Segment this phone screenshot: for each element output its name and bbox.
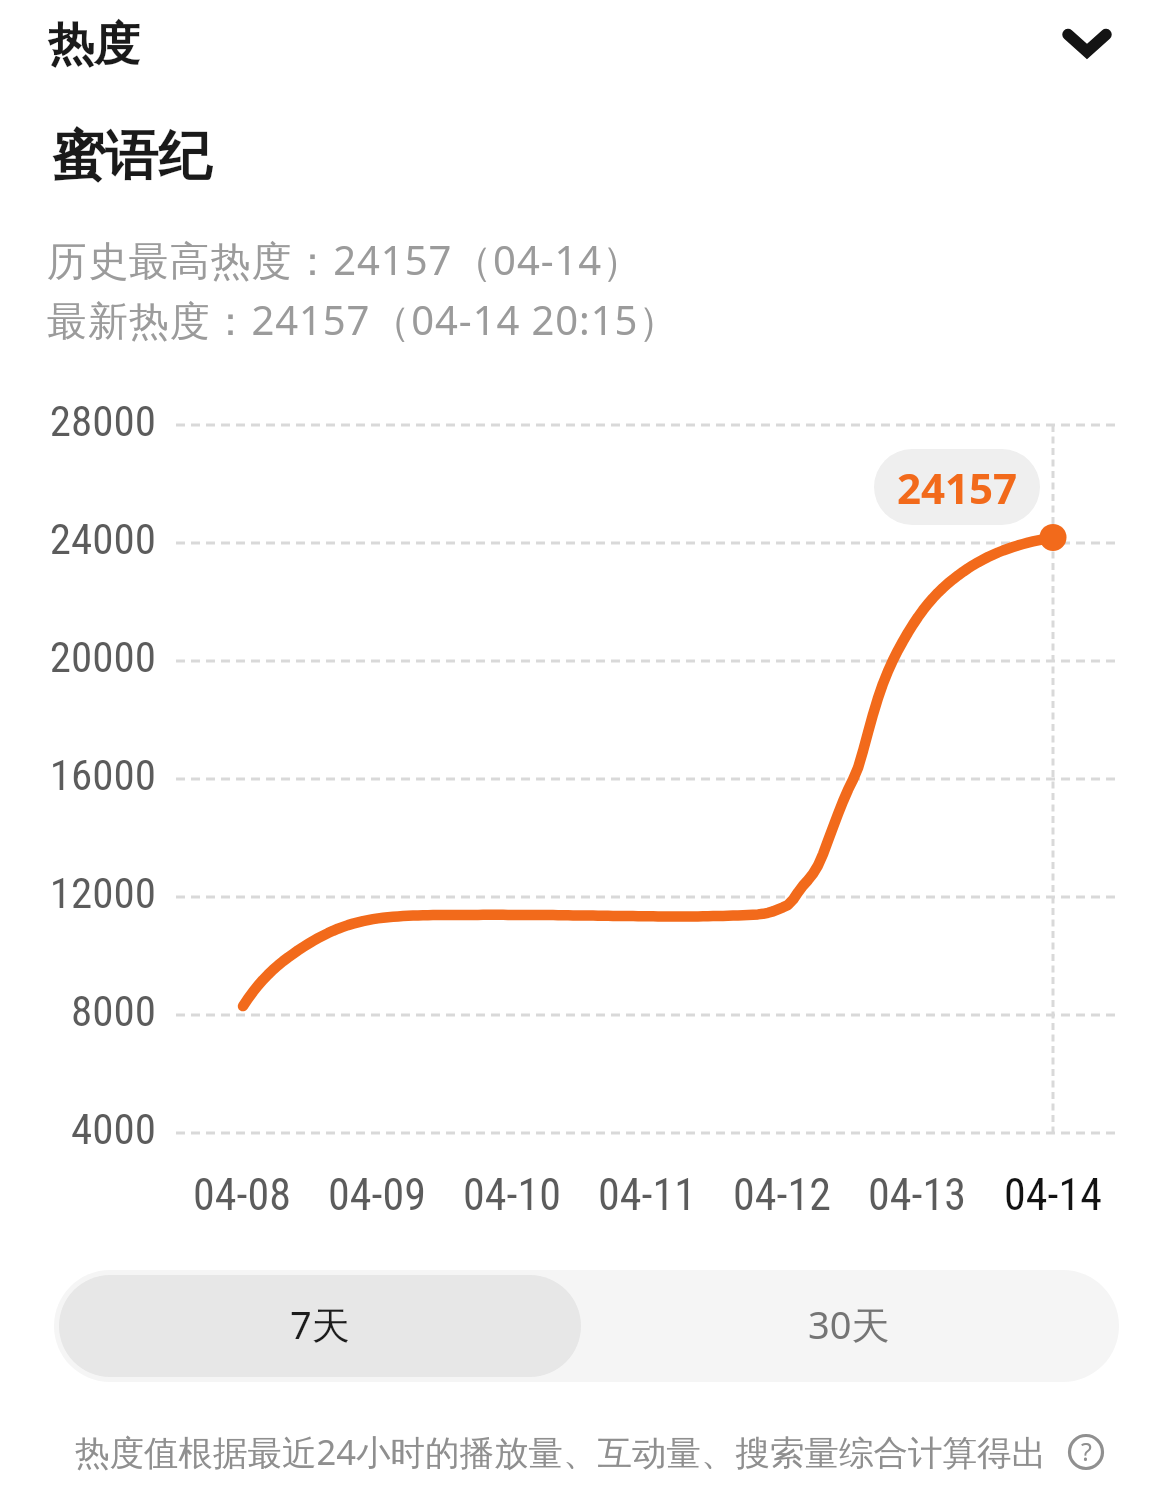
- staticText: 最新热度：24157（04-14 20:15）: [47, 292, 680, 347]
- staticText: 蜜语纪: [52, 123, 211, 190]
- staticText: 12000: [0, 868, 156, 918]
- staticText: 24000: [0, 514, 156, 564]
- button[interactable]: 热度: [0, 0, 1170, 88]
- staticText: 04-12: [692, 1169, 872, 1221]
- staticText: 24157: [897, 459, 1018, 516]
- staticText: 历史最高热度：24157（04-14）: [47, 232, 643, 287]
- staticText: 热度值根据最近24小时的播放量、互动量、搜索量综合计算得出: [75, 1428, 1046, 1475]
- staticText: 04-13: [827, 1169, 1007, 1221]
- button[interactable]: 30天: [586, 1270, 1119, 1382]
- staticText: ?: [1081, 1434, 1092, 1468]
- staticText: 30天: [808, 1298, 890, 1350]
- button[interactable]: Help: [1066, 1432, 1106, 1472]
- button[interactable]: 7天: [59, 1275, 581, 1377]
- staticText: 28000: [0, 396, 156, 446]
- staticText: 04-08: [152, 1169, 332, 1221]
- staticText: 20000: [0, 632, 156, 682]
- staticText: 4000: [0, 1104, 156, 1154]
- button[interactable]: Collapse: [1040, 0, 1134, 87]
- staticText: 8000: [0, 986, 156, 1036]
- staticText: 热度: [48, 16, 140, 74]
- staticText: 04-14: [963, 1169, 1143, 1221]
- staticText: 04-09: [287, 1169, 467, 1221]
- staticText: 04-11: [557, 1169, 737, 1221]
- staticText: 7天: [290, 1298, 350, 1350]
- staticText: 16000: [0, 750, 156, 800]
- staticText: 04-10: [422, 1169, 602, 1221]
